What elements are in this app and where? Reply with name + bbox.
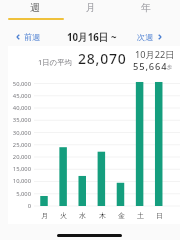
staticText: 週 xyxy=(30,2,40,14)
button[interactable]: 年 xyxy=(118,0,174,17)
staticText: 35,000 xyxy=(12,116,31,124)
staticText: 土 xyxy=(137,211,144,220)
staticText: 30,000 xyxy=(12,129,31,137)
staticText: 10月16日 ~ xyxy=(67,31,117,43)
staticText: 火 xyxy=(60,211,67,220)
staticText: 次週 xyxy=(137,32,154,42)
staticText: 水 xyxy=(79,211,86,220)
button[interactable]: 次週 xyxy=(137,31,164,43)
staticText: 日 xyxy=(156,211,163,220)
staticText: 1日の平均 xyxy=(38,57,72,67)
button[interactable]: 月 xyxy=(63,0,119,17)
staticText: 15,000 xyxy=(12,165,31,173)
staticText: 0 xyxy=(27,202,31,210)
staticText: 10,000 xyxy=(12,177,31,185)
staticText: 年 xyxy=(141,2,151,14)
staticText: 50,000 xyxy=(12,80,31,88)
staticText: 28,070 xyxy=(78,49,127,68)
staticText: 木 xyxy=(99,211,106,220)
staticText: 前週 xyxy=(24,32,41,42)
staticText: 25,000 xyxy=(12,141,31,149)
staticText: 55,664 xyxy=(133,60,168,73)
staticText: 歩 xyxy=(167,64,173,71)
staticText: 40,000 xyxy=(12,104,31,112)
staticText: 5,000 xyxy=(16,190,31,198)
staticText: 10月22日 xyxy=(135,48,175,61)
staticText: 45,000 xyxy=(12,92,31,100)
button[interactable]: 週 xyxy=(7,0,63,17)
staticText: 月 xyxy=(41,211,48,220)
button[interactable]: 前週 xyxy=(14,31,41,43)
staticText: 月 xyxy=(86,2,96,14)
staticText: 金 xyxy=(118,211,125,220)
staticText: 20,000 xyxy=(12,153,31,161)
